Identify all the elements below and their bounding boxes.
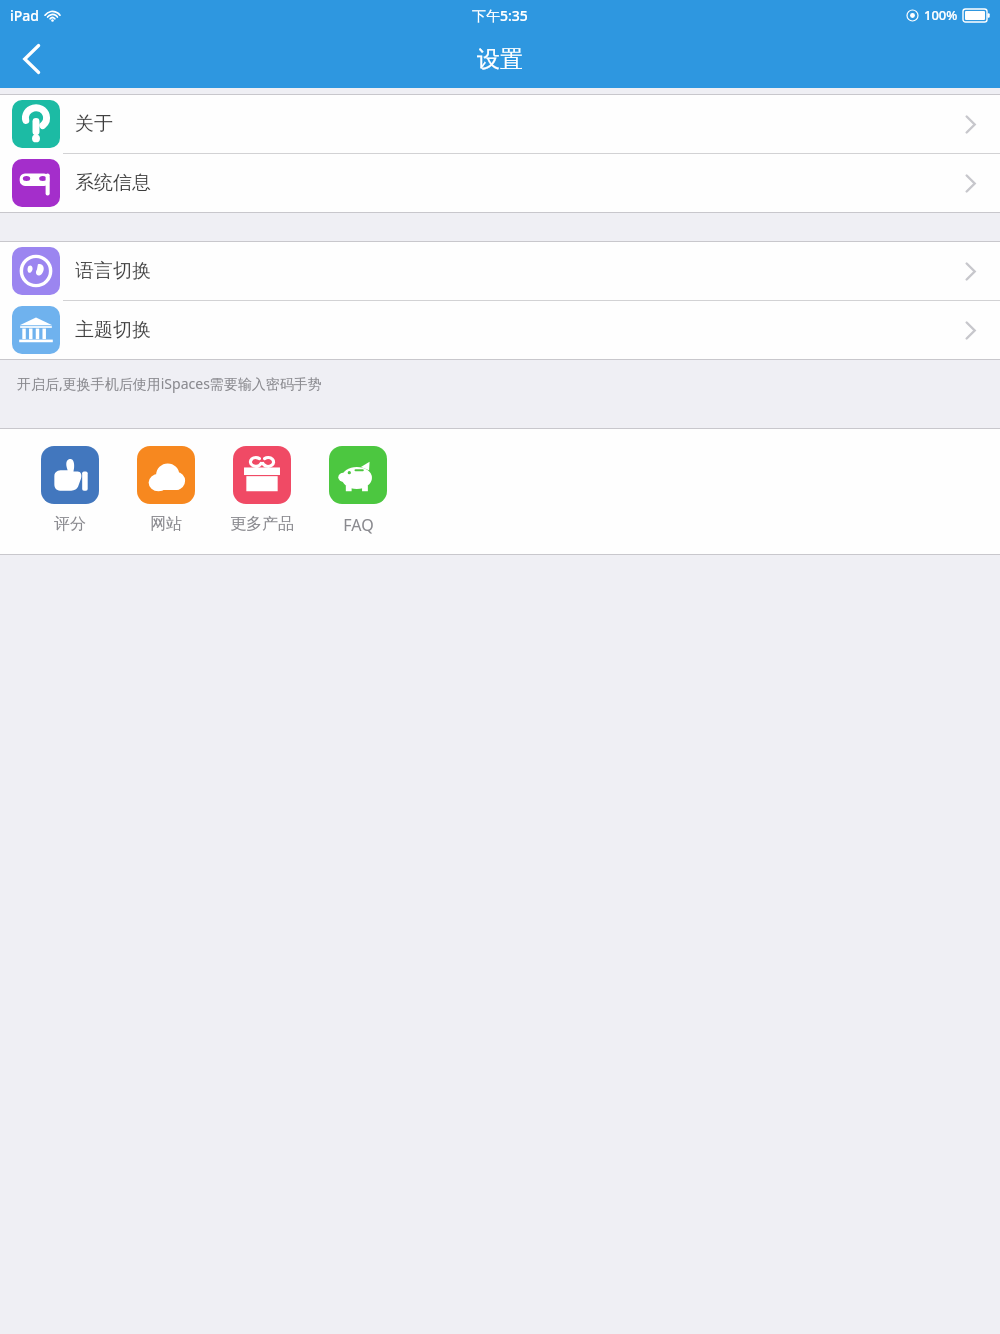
- button[interactable]: Back: [0, 30, 62, 88]
- staticText: 评分: [54, 514, 86, 534]
- staticText: 设置: [477, 45, 523, 74]
- button[interactable]: 语言切换: [0, 242, 1000, 300]
- button[interactable]: 系统信息: [0, 154, 1000, 212]
- button[interactable]: 网站: [118, 446, 214, 534]
- staticText: 更多产品: [230, 514, 294, 534]
- staticText: 主题切换: [75, 318, 151, 342]
- button[interactable]: 关于: [0, 95, 1000, 153]
- staticText: iPad: [10, 6, 40, 25]
- staticText: FAQ: [343, 514, 374, 536]
- staticText: 开启后,更换手机后使用iSpaces需要输入密码手势: [17, 374, 322, 393]
- staticText: 关于: [75, 112, 113, 136]
- staticText: 语言切换: [75, 259, 151, 283]
- button[interactable]: FAQ: [310, 446, 406, 536]
- button[interactable]: 评分: [22, 446, 118, 534]
- staticText: 网站: [150, 514, 182, 534]
- staticText: 系统信息: [75, 171, 151, 195]
- staticText: 下午5:35: [472, 6, 528, 25]
- button[interactable]: 更多产品: [214, 446, 310, 534]
- button[interactable]: 主题切换: [0, 301, 1000, 359]
- staticText: 100%: [924, 6, 958, 24]
